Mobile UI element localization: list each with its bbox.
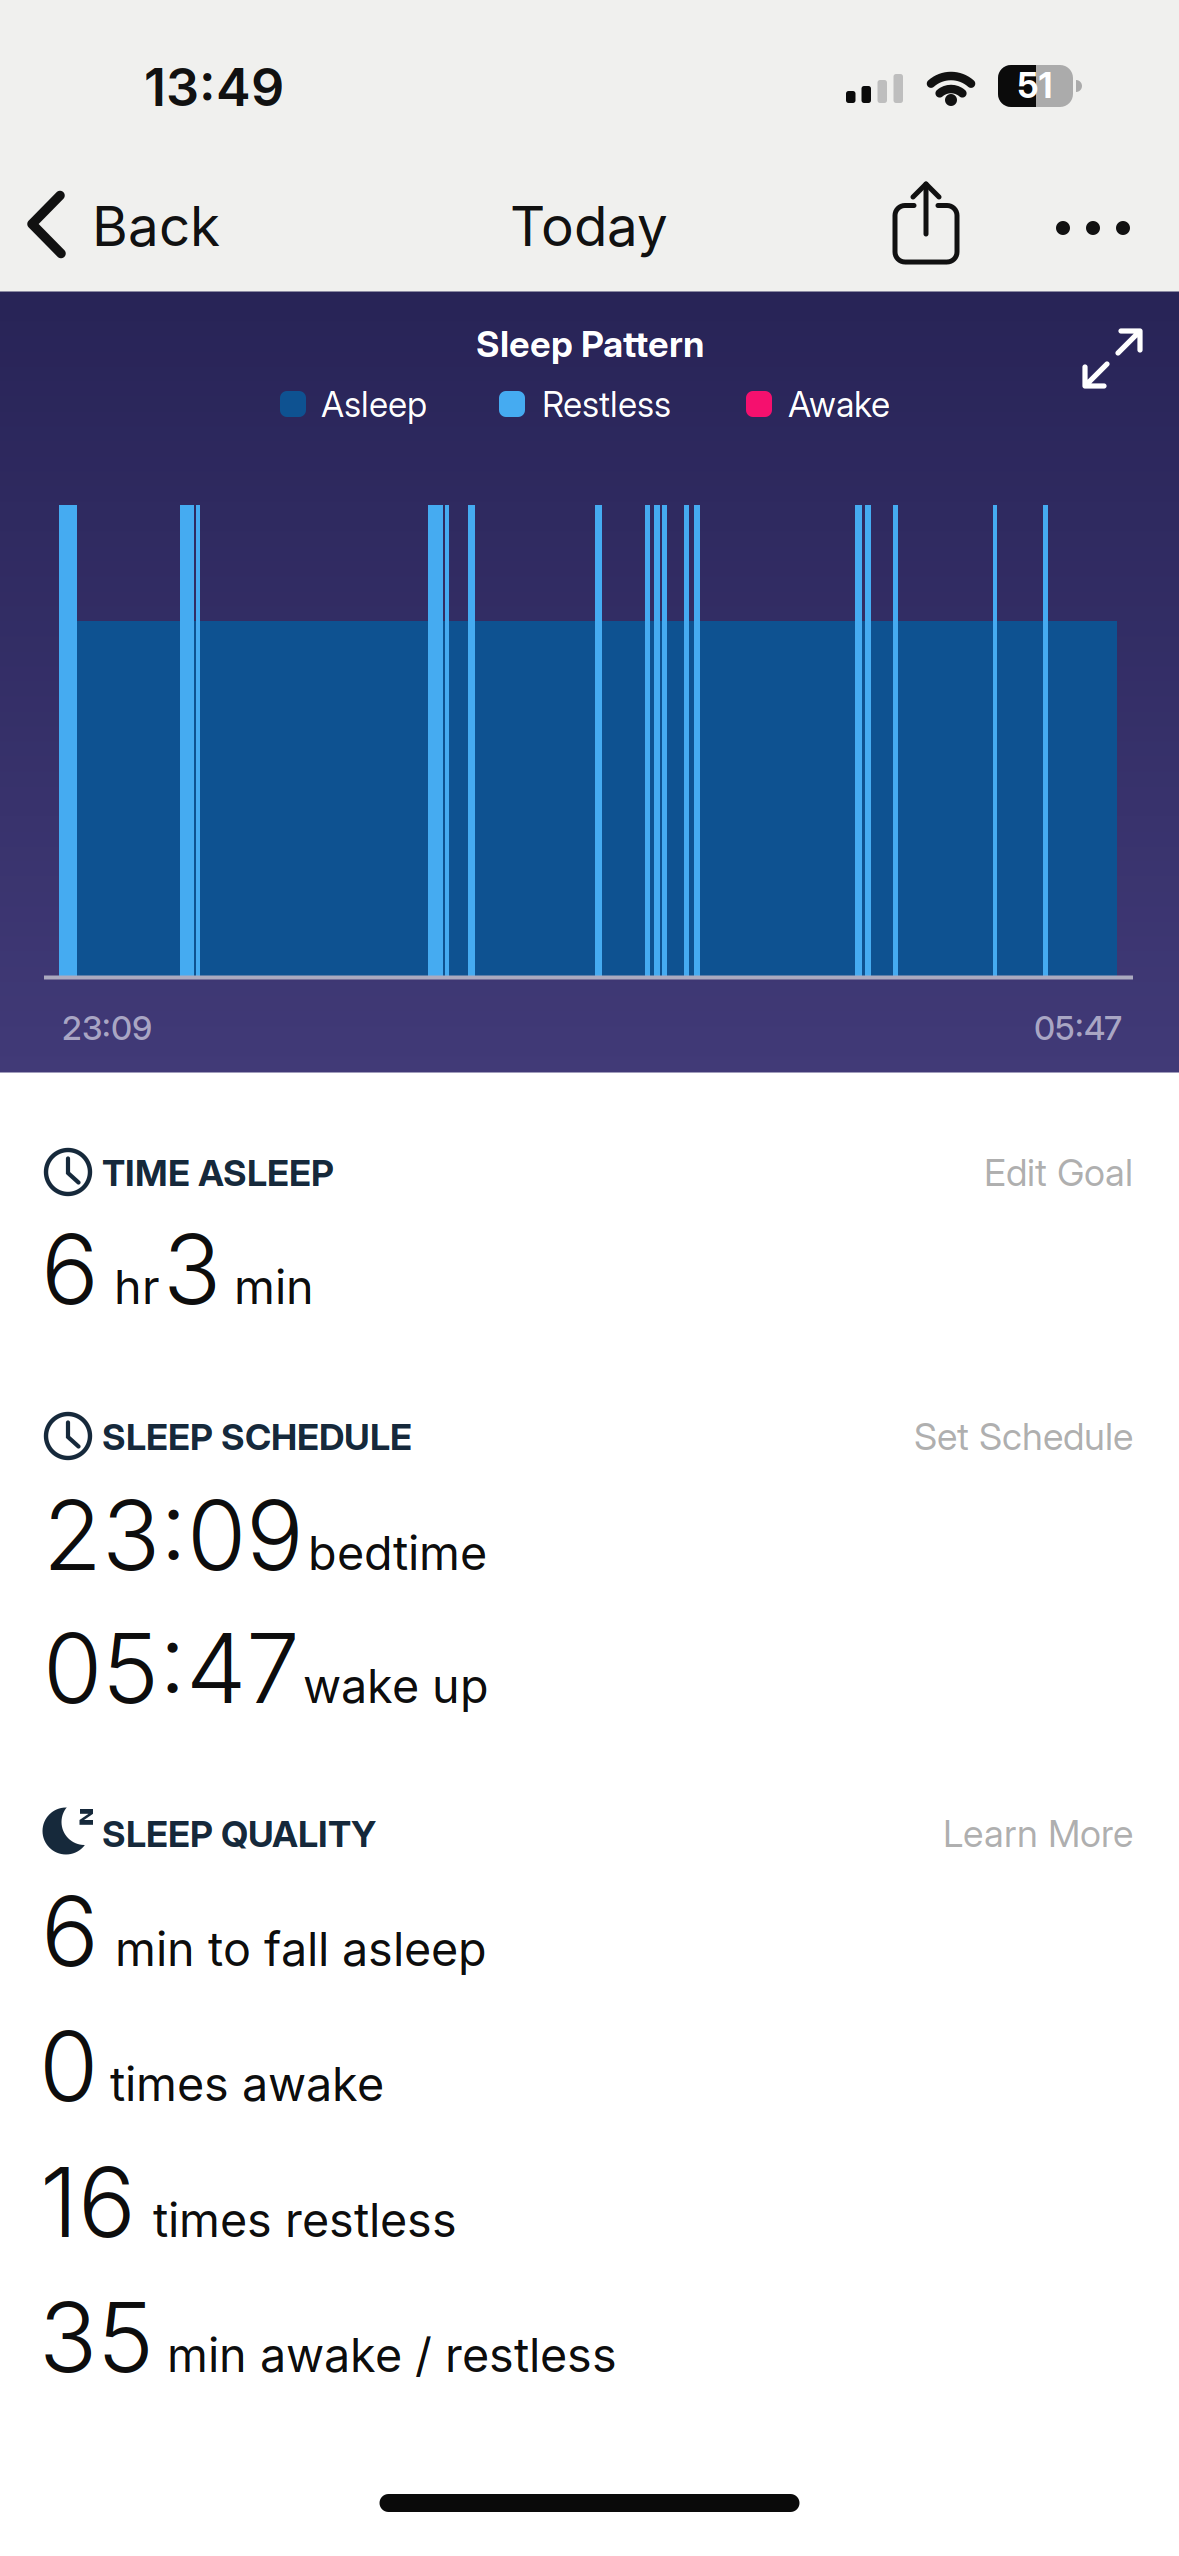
staticText: wake up: [303, 1658, 489, 1714]
staticText: SLEEP QUALITY: [102, 1812, 376, 1856]
staticText: 23:09: [43, 1477, 304, 1593]
staticText: SLEEP SCHEDULE: [102, 1415, 412, 1459]
staticText: 35: [39, 2279, 154, 2395]
staticText: min to fall asleep: [115, 1921, 487, 1977]
staticText: 3: [163, 1211, 221, 1327]
staticText: 6: [41, 1873, 99, 1989]
staticText: Asleep: [321, 383, 427, 425]
staticText: times awake: [110, 2056, 384, 2112]
staticText: 51: [1017, 64, 1052, 106]
staticText: Sleep Pattern: [476, 322, 704, 366]
staticText: hr: [114, 1259, 160, 1315]
staticText: Back: [92, 193, 220, 259]
staticText: min: [234, 1259, 314, 1315]
staticText: times restless: [153, 2192, 457, 2248]
staticText: Restless: [542, 383, 671, 425]
staticText: Today: [510, 193, 668, 259]
staticText: 16: [40, 2144, 136, 2260]
staticText: Learn More: [943, 1811, 1133, 1856]
staticText: TIME ASLEEP: [102, 1151, 334, 1195]
staticText: 0: [39, 2008, 98, 2124]
staticText: min awake / restless: [167, 2327, 617, 2383]
staticText: 6: [41, 1211, 99, 1327]
staticText: Set Schedule: [914, 1414, 1133, 1459]
staticText: Edit Goal: [984, 1150, 1133, 1195]
staticText: 05:47: [43, 1610, 300, 1726]
staticText: bedtime: [308, 1525, 487, 1581]
staticText: 13:49: [144, 56, 284, 118]
staticText: Awake: [788, 383, 890, 425]
staticText: 23:09: [62, 1008, 152, 1048]
staticText: 05:47: [1034, 1008, 1122, 1048]
